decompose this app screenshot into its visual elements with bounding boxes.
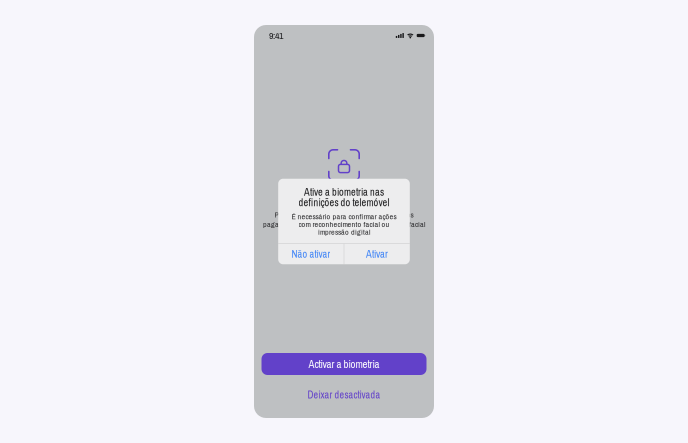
staticText: Pretende ativar a biometria para confirm…: [274, 209, 413, 220]
staticText: Deixar desactivada: [307, 388, 380, 402]
staticText: Ative a biometria nas: [304, 185, 384, 199]
staticText: ou impressão digital?: [311, 228, 377, 239]
staticText: Activar a biometria: [308, 357, 379, 371]
button[interactable]: Ativar: [344, 244, 410, 264]
button[interactable]: Deixar desactivada: [261, 386, 426, 404]
staticText: É necessário para confirmar ações: [291, 211, 396, 222]
staticText: Ativar: [366, 247, 388, 261]
staticText: impressão digital: [318, 226, 370, 237]
button[interactable]: Não ativar: [278, 244, 344, 264]
button[interactable]: Activar a biometria: [261, 353, 426, 375]
staticText: definições do telemóvel: [298, 196, 389, 209]
staticText: pagamentos e os acessos com reconhecimen…: [263, 219, 425, 230]
staticText: 9:41: [269, 29, 283, 42]
staticText: com reconhecimento facial ou: [298, 219, 389, 230]
staticText: Não ativar: [291, 247, 330, 261]
